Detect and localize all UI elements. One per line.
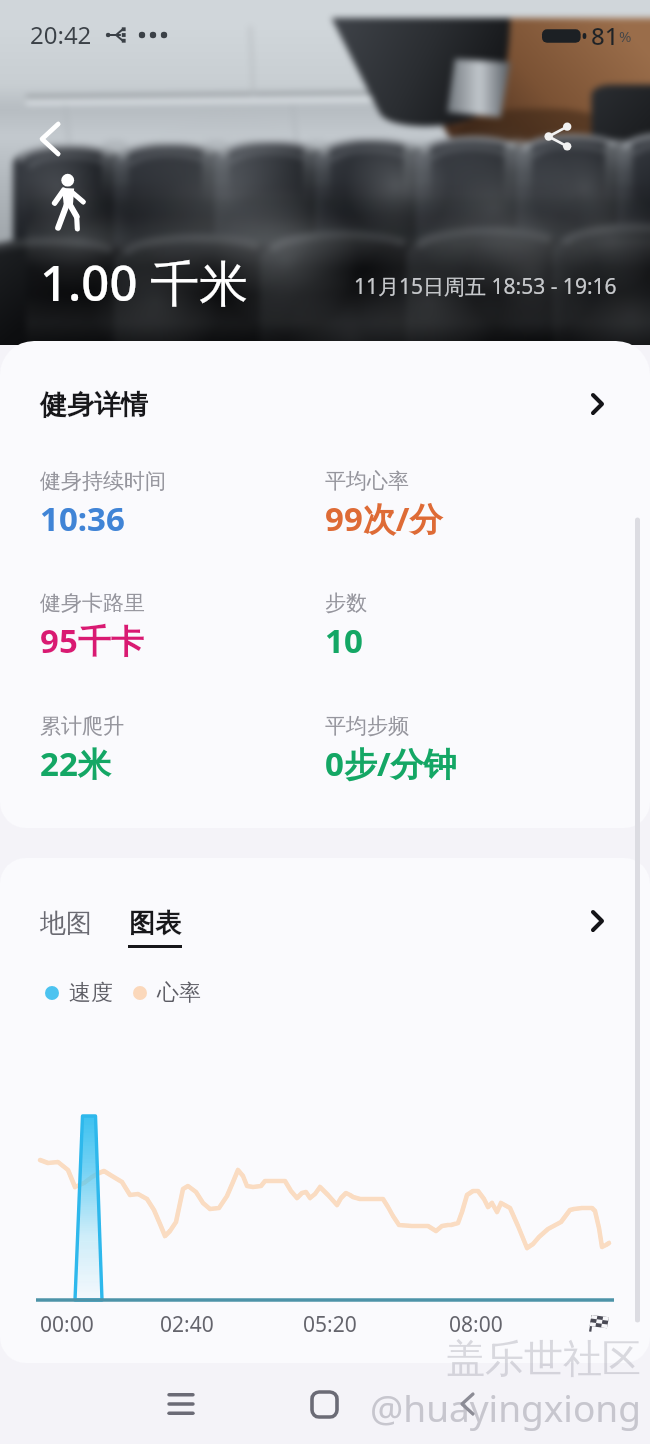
staticText: 心率: [157, 979, 201, 1007]
staticText: 健身详情: [40, 388, 148, 422]
staticText: 00:00: [40, 1310, 94, 1339]
staticText: 0步/分钟: [325, 741, 457, 786]
staticText: %: [619, 26, 632, 46]
button[interactable]: Home: [294, 1374, 354, 1434]
staticText: 累计爬升: [40, 713, 124, 739]
staticText: 健身卡路里: [40, 590, 145, 616]
staticText: 平均心率: [325, 468, 409, 494]
staticText: 08:00: [449, 1310, 503, 1339]
staticText: 步数: [325, 590, 367, 616]
staticText: 05:20: [303, 1310, 357, 1339]
staticText: 1.00 千米: [40, 249, 249, 316]
staticText: 11月15日周五 18:53 - 19:16: [354, 272, 617, 301]
staticText: 22米: [40, 741, 111, 786]
staticText: @huayingxiong: [370, 1382, 641, 1432]
staticText: 95千卡: [40, 618, 144, 663]
button[interactable]: Share: [530, 108, 586, 164]
staticText: 盖乐世社区: [446, 1334, 641, 1383]
staticText: 99次/分: [325, 496, 443, 541]
button[interactable]: Recents: [151, 1374, 211, 1434]
staticText: 地图: [40, 907, 92, 940]
button[interactable]: Back: [22, 112, 76, 166]
button[interactable]: 地图: [40, 907, 92, 940]
staticText: 10: [325, 618, 363, 663]
button[interactable]: 健身详情: [0, 341, 650, 828]
button[interactable]: 图表: [128, 907, 182, 948]
staticText: 健身持续时间: [40, 468, 166, 494]
staticText: 速度: [69, 979, 113, 1007]
staticText: 02:40: [160, 1310, 214, 1339]
staticText: 20:42: [30, 18, 92, 51]
staticText: 图表: [129, 907, 181, 940]
staticText: 10:36: [40, 496, 125, 541]
staticText: 平均步频: [325, 713, 409, 739]
button[interactable]: Back: [437, 1374, 497, 1434]
staticText: 81: [591, 19, 619, 52]
button[interactable]: Open fitness details: [576, 383, 618, 425]
button[interactable]: Open chart: [576, 900, 618, 942]
